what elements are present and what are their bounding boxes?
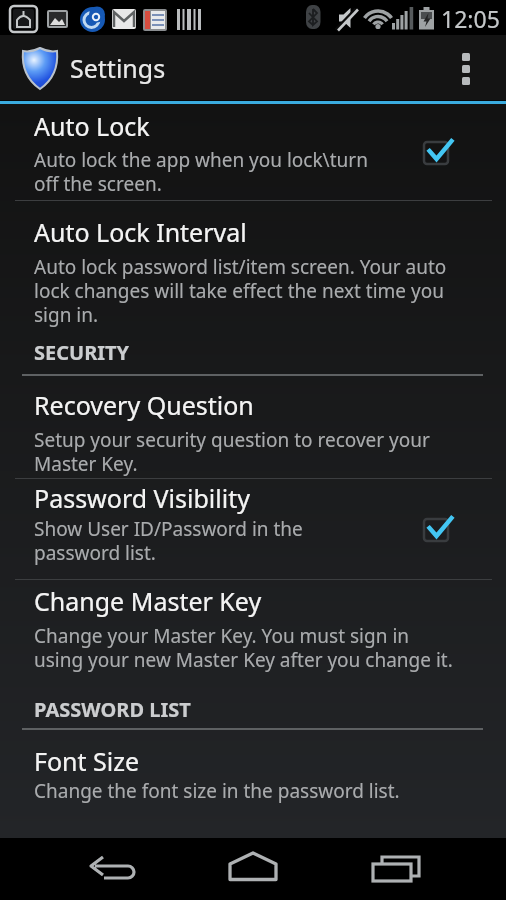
staticText: Auto Lock Interval xyxy=(34,215,247,249)
button[interactable] xyxy=(81,844,141,890)
staticText: Auto lock the app when you lock\turn off… xyxy=(34,147,368,196)
button[interactable]: Password Visibility xyxy=(0,479,506,579)
staticText: Change Master Key xyxy=(34,584,262,618)
staticText: Auto Lock xyxy=(34,109,150,143)
staticText: Change the font size in the password lis… xyxy=(34,778,400,804)
staticText: Recovery Question xyxy=(34,388,254,422)
staticText: Password Visibility xyxy=(34,481,250,515)
staticText: PASSWORD LIST xyxy=(34,696,191,723)
staticText: 12:05 xyxy=(441,3,500,34)
button[interactable]: Font Size xyxy=(0,732,506,832)
staticText: Setup your security question to recover … xyxy=(34,427,430,476)
button[interactable] xyxy=(365,845,425,891)
staticText: Settings xyxy=(70,51,166,85)
button[interactable] xyxy=(424,139,458,169)
staticText: Show User ID/Password in the password li… xyxy=(34,516,303,565)
staticText: Auto lock password list/item screen. You… xyxy=(34,254,447,327)
button[interactable]: Change Master Key xyxy=(0,580,506,684)
button[interactable] xyxy=(223,845,283,891)
button[interactable]: Recovery Question xyxy=(0,378,506,478)
staticText: SECURITY xyxy=(34,339,130,366)
button[interactable]: Auto Lock xyxy=(0,104,506,200)
button[interactable] xyxy=(448,43,488,93)
staticText: Font Size xyxy=(34,744,140,778)
button[interactable]: Auto Lock Interval xyxy=(0,201,506,331)
button[interactable] xyxy=(424,516,458,546)
staticText: Change your Master Key. You must sign in… xyxy=(34,623,453,672)
